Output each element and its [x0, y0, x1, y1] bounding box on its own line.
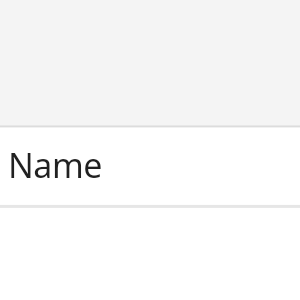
staticText: Name: [8, 142, 102, 188]
button[interactable]: Name: [0, 127, 300, 206]
